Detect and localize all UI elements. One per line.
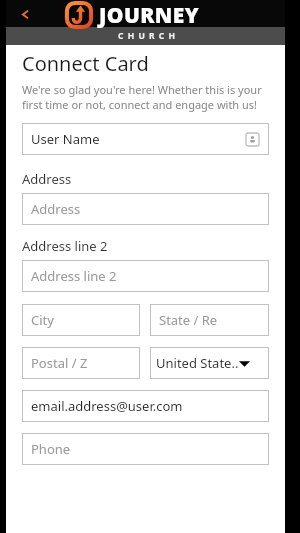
staticText: United State.. (156, 354, 239, 372)
button[interactable]: Phone (22, 433, 269, 465)
button[interactable]: User Name (22, 123, 269, 155)
button[interactable]: Back (12, 1, 38, 27)
button[interactable]: United State.. (150, 347, 269, 379)
staticText: C H U R C H (118, 30, 176, 42)
staticText: email.address@user.com (31, 397, 183, 415)
button[interactable]: City (22, 304, 140, 336)
staticText: Phone (31, 440, 71, 458)
staticText: Connect Card (22, 50, 149, 77)
button[interactable]: email.address@user.com (22, 390, 269, 422)
staticText: JOURNEY (99, 1, 200, 30)
button[interactable]: Choose contact (244, 131, 260, 147)
staticText: Address (22, 170, 72, 188)
staticText: Address (31, 200, 81, 218)
staticText: City (31, 311, 54, 329)
staticText: Address line 2 (31, 267, 117, 285)
staticText: State / Re (159, 311, 218, 329)
button[interactable]: State / Re (150, 304, 269, 336)
staticText: Postal / Z (31, 354, 88, 372)
button[interactable]: Address line 2 (22, 260, 269, 292)
button[interactable]: Postal / Z (22, 347, 140, 379)
staticText: User Name (31, 130, 100, 148)
staticText: Address line 2 (22, 237, 108, 255)
staticText: We're so glad you're here! Whether this … (22, 82, 269, 112)
button[interactable]: Address (22, 193, 269, 225)
